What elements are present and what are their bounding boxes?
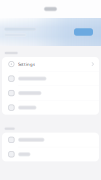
button[interactable]: Item [2,71,99,86]
button[interactable]: Item [2,100,99,115]
button[interactable]: Item [2,86,99,100]
button[interactable]: Item [2,147,99,161]
staticText: Settings [18,61,35,67]
button[interactable]: Update [74,28,93,36]
button[interactable]: Item [2,133,99,147]
button[interactable]: Settings [2,57,99,71]
